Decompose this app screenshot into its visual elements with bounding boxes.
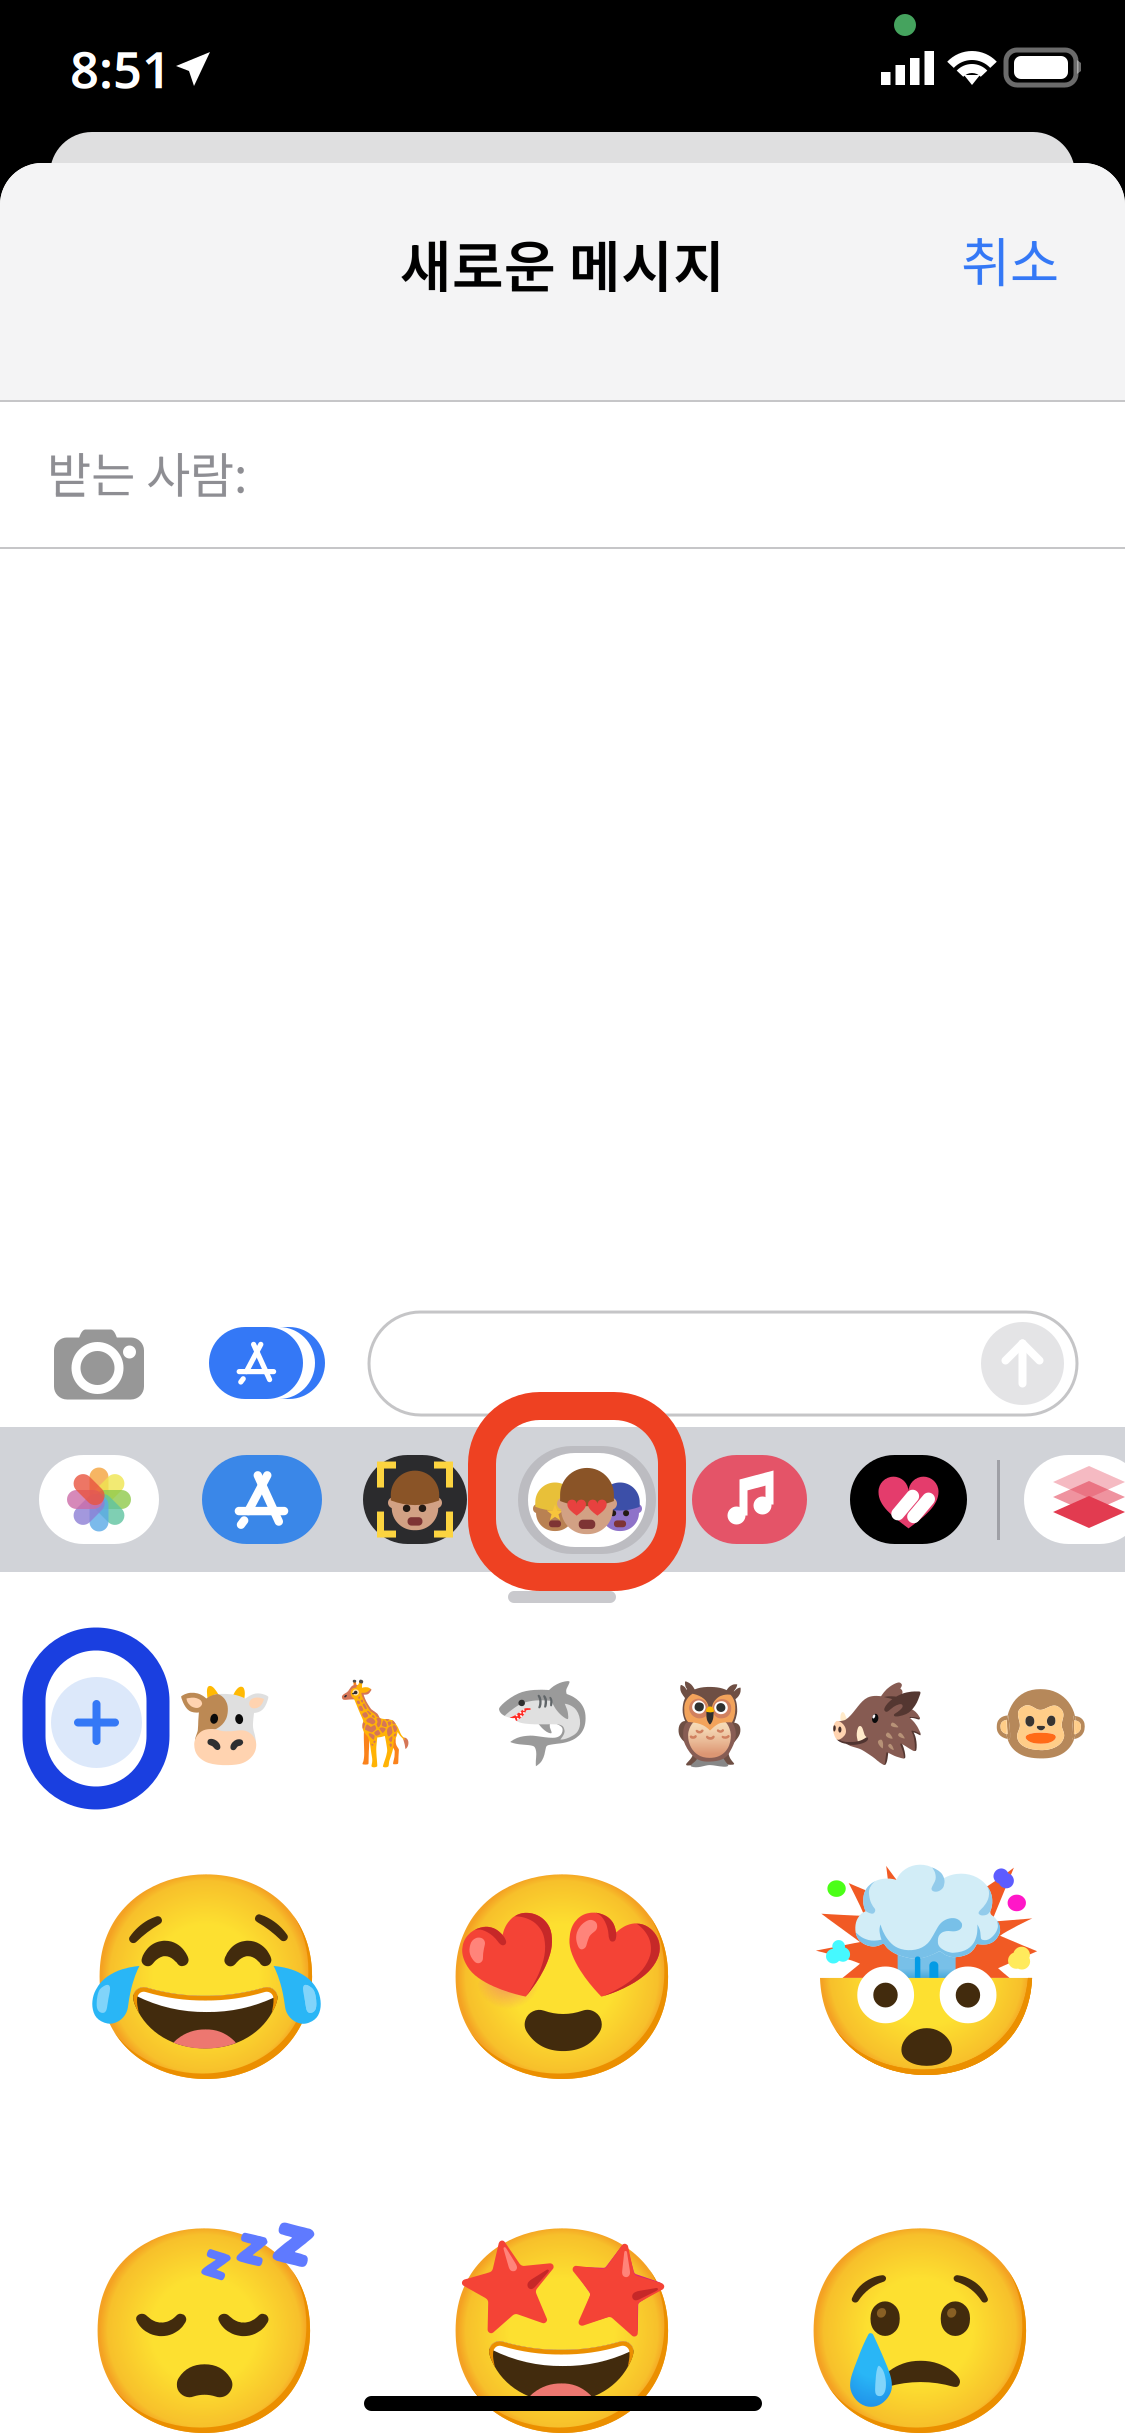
button[interactable]: Memoji stickers [518,1446,656,1554]
staticText: 😍 [438,1864,687,2092]
staticText: 😂 [82,1864,331,2092]
button[interactable]: Camera [34,1309,164,1419]
button[interactable]: Laughing sticker [82,1864,331,2092]
staticText: 받는 사람: [47,437,247,506]
button[interactable]: App Store [202,1455,322,1544]
staticText: 🦈 [493,1678,593,1769]
button[interactable]: App Store [202,1309,332,1419]
staticText: 🐗 [827,1678,927,1769]
button[interactable]: Cow [175,1678,275,1769]
staticText: 🦒 [325,1678,425,1769]
button[interactable]: Send [981,1322,1064,1405]
button[interactable]: Sleeping sticker [80,2218,329,2436]
staticText: 🐵 [991,1678,1091,1769]
button[interactable]: iMessage text field [369,1312,1077,1415]
staticText: 😴 [80,2218,329,2436]
button[interactable]: Photos [39,1455,159,1544]
button[interactable]: Star eyes sticker [438,2218,687,2436]
button[interactable]: Fitness [850,1455,967,1544]
button[interactable]: Stacks [1024,1455,1125,1544]
button[interactable]: Giraffe [325,1678,425,1769]
staticText: 취소 [961,220,1059,298]
staticText: 😢 [796,2218,1045,2436]
button[interactable]: 받는 사람: [0,402,1125,547]
staticText: 🐮 [175,1678,275,1769]
staticText: 🤯 [802,1860,1051,2088]
staticText: 🤩 [438,2218,687,2436]
button[interactable]: Crying sticker [796,2218,1045,2436]
button[interactable]: Heart eyes sticker [438,1864,687,2092]
staticText: 🦉 [660,1678,760,1769]
button[interactable]: Music [692,1455,807,1544]
staticText: 새로운 메시지 [400,222,725,304]
button[interactable]: Memoji camera [363,1455,467,1544]
button[interactable]: Mind blown sticker [802,1860,1051,2088]
button[interactable]: Create Memoji [51,1677,142,1768]
button[interactable]: Monkey [991,1678,1091,1769]
button[interactable]: Boar [827,1678,927,1769]
button[interactable]: Owl [660,1678,760,1769]
staticText: 8:51 [70,35,171,102]
button[interactable]: 취소 [935,204,1085,314]
button[interactable]: Shark [493,1678,593,1769]
